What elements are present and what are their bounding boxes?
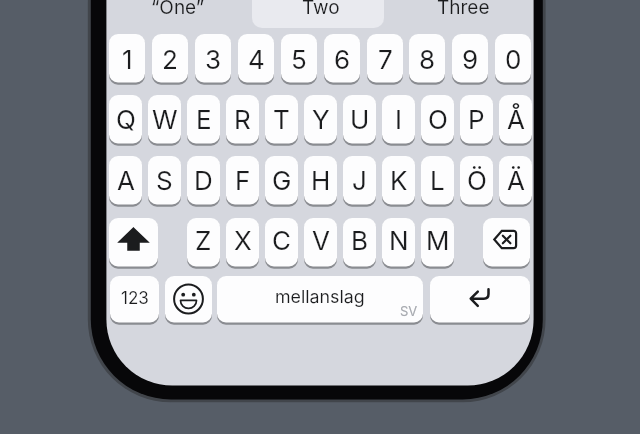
button[interactable]: 1	[109, 34, 145, 83]
staticText: M	[426, 225, 450, 256]
button[interactable]: T	[265, 95, 298, 144]
staticText: 0	[505, 44, 522, 75]
button[interactable]: S	[148, 156, 181, 205]
button[interactable]: 3	[195, 34, 231, 83]
staticText: J	[352, 165, 367, 196]
staticText: S	[156, 165, 173, 196]
button[interactable]: V	[304, 218, 337, 267]
button[interactable]: G	[265, 156, 298, 205]
button[interactable]: 4	[238, 34, 274, 83]
button[interactable]	[109, 218, 158, 267]
button[interactable]: 9	[452, 34, 488, 83]
button[interactable]: 7	[367, 34, 403, 83]
staticText: Ä	[507, 165, 525, 196]
staticText: 8	[419, 44, 436, 75]
button[interactable]: J	[343, 156, 376, 205]
button[interactable]: U	[343, 95, 376, 144]
button[interactable]: Ä	[499, 156, 532, 205]
staticText: 1	[122, 44, 133, 75]
button[interactable]: B	[343, 218, 376, 267]
staticText: K	[390, 165, 408, 196]
staticText: O	[428, 104, 448, 135]
staticText: G	[272, 165, 292, 196]
button[interactable]: “One”	[107, 0, 249, 22]
button[interactable]: 8	[409, 34, 445, 83]
staticText: 9	[462, 44, 479, 75]
button[interactable]: L	[421, 156, 454, 205]
staticText: V	[312, 225, 330, 256]
button[interactable]: D	[187, 156, 220, 205]
staticText: W	[152, 104, 178, 135]
button[interactable]: Y	[304, 95, 337, 144]
staticText: T	[273, 104, 290, 135]
button[interactable]: P	[460, 95, 493, 144]
button[interactable]: Z	[187, 218, 220, 267]
staticText: A	[117, 165, 135, 196]
button[interactable]: Ö	[460, 156, 493, 205]
staticText: 4	[248, 44, 265, 75]
button[interactable]: 2	[152, 34, 188, 83]
staticText: X	[234, 225, 252, 256]
button[interactable]	[430, 276, 530, 323]
staticText: Y	[312, 104, 330, 135]
staticText: U	[350, 104, 370, 135]
button[interactable]: R	[226, 95, 259, 144]
button[interactable]: Å	[499, 95, 532, 144]
staticText: “One”	[151, 0, 205, 19]
staticText: 6	[334, 44, 351, 75]
button[interactable]: 123	[110, 276, 159, 323]
button[interactable]	[252, 0, 384, 28]
button[interactable]: 6	[324, 34, 360, 83]
staticText: Å	[507, 104, 525, 135]
staticText: 5	[291, 44, 307, 75]
staticText: Q	[116, 104, 136, 135]
button[interactable]: F	[226, 156, 259, 205]
button[interactable]: E	[187, 95, 220, 144]
button[interactable]: X	[226, 218, 259, 267]
button[interactable]: I	[382, 95, 415, 144]
staticText: C	[272, 225, 291, 256]
button[interactable]	[483, 218, 530, 267]
staticText: 2	[162, 44, 178, 75]
staticText: B	[351, 225, 369, 256]
staticText: P	[468, 104, 485, 135]
button[interactable]: M	[421, 218, 454, 267]
staticText: Two	[302, 0, 340, 19]
button[interactable]: Three	[392, 0, 534, 22]
button[interactable]: Two	[250, 0, 392, 22]
staticText: 123	[121, 288, 149, 309]
staticText: L	[430, 165, 445, 196]
button[interactable]: O	[421, 95, 454, 144]
button[interactable]: Q	[109, 95, 142, 144]
staticText: Three	[437, 0, 490, 19]
button[interactable]: C	[265, 218, 298, 267]
staticText: Z	[195, 225, 212, 256]
staticText: I	[395, 104, 402, 135]
staticText: mellanslag	[275, 286, 365, 308]
button[interactable]: H	[304, 156, 337, 205]
button[interactable]: N	[382, 218, 415, 267]
staticText: D	[194, 165, 213, 196]
staticText: N	[389, 225, 409, 256]
staticText: 3	[205, 44, 222, 75]
staticText: Ö	[467, 165, 487, 196]
button[interactable]: K	[382, 156, 415, 205]
button[interactable]: 5	[281, 34, 317, 83]
staticText: H	[311, 165, 331, 196]
staticText: E	[196, 104, 212, 135]
button[interactable]: A	[109, 156, 142, 205]
button[interactable]: 0	[495, 34, 531, 83]
staticText: SV	[400, 303, 418, 319]
staticText: R	[234, 104, 251, 135]
button[interactable]: W	[148, 95, 181, 144]
staticText: F	[235, 165, 251, 196]
button[interactable]	[165, 276, 212, 323]
button[interactable]: mellanslag	[217, 276, 423, 323]
staticText: 7	[378, 44, 393, 75]
